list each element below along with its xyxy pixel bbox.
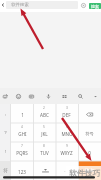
staticText: 软件技巧 bbox=[69, 168, 101, 177]
button[interactable]: 符 bbox=[0, 161, 11, 180]
button[interactable]: 6 bbox=[55, 123, 78, 142]
button[interactable]: 3 bbox=[55, 104, 78, 123]
staticText: MNO bbox=[61, 131, 73, 137]
button[interactable]: ！ bbox=[0, 142, 11, 161]
staticText: 6 bbox=[66, 125, 68, 129]
staticText: 8 bbox=[43, 144, 45, 148]
staticText: 7 bbox=[21, 144, 23, 148]
staticText: JKL bbox=[41, 131, 48, 137]
button[interactable] bbox=[78, 104, 101, 123]
staticText: 9 bbox=[66, 144, 68, 148]
staticText: 5 bbox=[43, 125, 45, 129]
button[interactable]: Theme bbox=[58, 88, 70, 104]
button[interactable]: 2 bbox=[33, 104, 55, 123]
button[interactable]: 4 bbox=[11, 123, 33, 142]
button[interactable]: 7 bbox=[11, 142, 33, 161]
staticText: 确定 bbox=[85, 168, 94, 174]
staticText: 。， bbox=[64, 168, 72, 173]
button[interactable]: 确定 bbox=[78, 161, 101, 180]
button[interactable]: Voice input bbox=[42, 88, 54, 104]
button[interactable]: ， bbox=[0, 104, 11, 123]
staticText: 0 bbox=[88, 150, 91, 156]
button[interactable]: Settings bbox=[79, 0, 88, 10]
button[interactable]: Search bbox=[74, 88, 86, 104]
staticText: 3 bbox=[66, 106, 68, 110]
button[interactable] bbox=[33, 161, 58, 180]
staticText: ， bbox=[3, 111, 8, 117]
button[interactable]: 软件搜索 bbox=[6, 1, 78, 9]
button[interactable]: 1 bbox=[11, 104, 33, 123]
button[interactable]: ？ bbox=[0, 123, 11, 142]
button[interactable]: 符号 bbox=[78, 123, 101, 142]
staticText: WXYZ bbox=[60, 150, 73, 156]
button[interactable]: 。， bbox=[58, 161, 78, 180]
staticText: 4 bbox=[21, 125, 23, 129]
staticText: TUV bbox=[40, 150, 49, 156]
staticText: GHI bbox=[18, 131, 27, 137]
button[interactable]: 5 bbox=[33, 123, 55, 142]
staticText: 符号 bbox=[85, 131, 94, 136]
staticText: ？ bbox=[3, 130, 8, 136]
button[interactable]: Back bbox=[0, 0, 6, 9]
button[interactable]: Clipboard bbox=[25, 88, 37, 104]
button[interactable]: 0 bbox=[78, 142, 101, 161]
button[interactable]: 8 bbox=[33, 142, 55, 161]
staticText: PQRS bbox=[16, 150, 28, 156]
button[interactable]: 9 bbox=[55, 142, 78, 161]
staticText: 123 bbox=[18, 169, 26, 175]
staticText: 搜索 bbox=[91, 4, 99, 9]
button[interactable]: Keyboard layout bbox=[0, 88, 11, 104]
button[interactable]: More bbox=[89, 88, 101, 104]
staticText: 1 bbox=[21, 112, 24, 118]
staticText: ABC bbox=[40, 112, 49, 118]
button[interactable]: Emoji bbox=[12, 88, 24, 104]
staticText: 符 bbox=[3, 168, 8, 174]
button[interactable]: 123 bbox=[11, 161, 33, 180]
staticText: DEF bbox=[62, 112, 71, 118]
staticText: 2 bbox=[43, 106, 45, 110]
staticText: ！ bbox=[3, 149, 8, 155]
staticText: 软件搜索 bbox=[11, 2, 29, 8]
button[interactable]: 搜索 bbox=[89, 3, 101, 9]
